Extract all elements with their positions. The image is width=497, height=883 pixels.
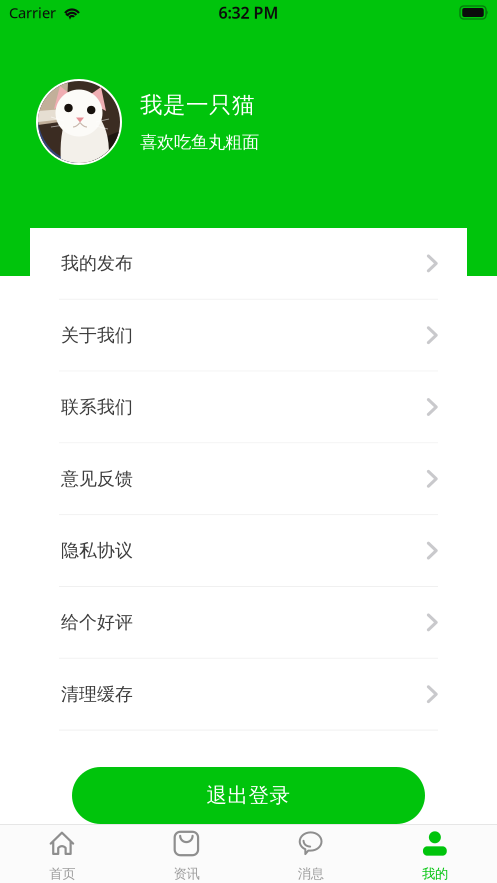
staticText: 6:32 PM	[218, 2, 278, 23]
button[interactable]: 我的	[373, 824, 497, 883]
staticText: 意见反馈	[61, 467, 133, 490]
staticText: 我的发布	[61, 252, 133, 275]
staticText: 首页	[49, 866, 75, 882]
button[interactable]: 资讯	[124, 824, 248, 883]
staticText: 资讯	[173, 866, 199, 882]
staticText: 喜欢吃鱼丸粗面	[140, 131, 259, 153]
button[interactable]: 给个好评	[30, 587, 467, 659]
staticText: 我的	[422, 866, 448, 882]
button[interactable]: 我的发布	[30, 228, 467, 300]
staticText: 联系我们	[61, 396, 133, 418]
button[interactable]: 意见反馈	[30, 443, 467, 515]
staticText: 清理缓存	[61, 683, 133, 705]
staticText: 退出登录	[206, 783, 290, 808]
button[interactable]: 消息	[248, 824, 373, 883]
staticText: Carrier	[9, 3, 56, 22]
button[interactable]: 清理缓存	[30, 659, 467, 731]
staticText: 消息	[298, 866, 324, 882]
button[interactable]: 关于我们	[30, 300, 467, 372]
staticText: 我是一只猫	[140, 91, 255, 119]
button[interactable]: 联系我们	[30, 372, 467, 443]
button[interactable]: 隐私协议	[30, 515, 467, 587]
staticText: 给个好评	[61, 611, 133, 634]
staticText: 隐私协议	[61, 539, 133, 562]
staticText: 关于我们	[61, 324, 133, 346]
button[interactable]: 退出登录	[72, 767, 425, 824]
button[interactable]: 首页	[0, 824, 124, 883]
